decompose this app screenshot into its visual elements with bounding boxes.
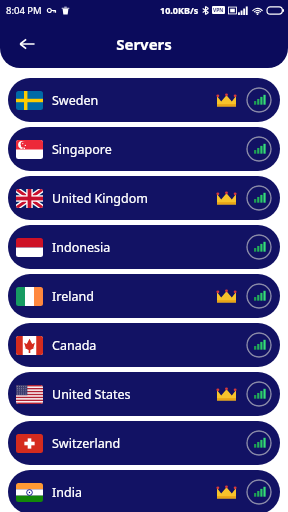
button[interactable]: Back bbox=[10, 27, 44, 61]
button[interactable]: Sweden bbox=[8, 78, 280, 122]
staticText: Ireland bbox=[52, 288, 217, 305]
staticText: Indonesia bbox=[52, 239, 217, 256]
staticText: 8:04 PM bbox=[6, 4, 42, 17]
staticText: Singapore bbox=[52, 141, 217, 158]
button[interactable]: India bbox=[8, 470, 280, 512]
staticText: Canada bbox=[52, 337, 217, 354]
staticText: 10.0KB/s bbox=[160, 4, 199, 16]
staticText: India bbox=[52, 484, 217, 501]
staticText: Servers bbox=[116, 34, 172, 54]
staticText: VPN bbox=[213, 7, 224, 14]
button[interactable]: Indonesia bbox=[8, 225, 280, 269]
button[interactable]: Ireland bbox=[8, 274, 280, 318]
button[interactable]: Canada bbox=[8, 323, 280, 367]
staticText: Sweden bbox=[52, 92, 217, 109]
button[interactable]: United Kingdom bbox=[8, 176, 280, 220]
button[interactable]: Switzerland bbox=[8, 421, 280, 465]
staticText: United Kingdom bbox=[52, 190, 217, 207]
staticText: Switzerland bbox=[52, 435, 217, 452]
staticText: United States bbox=[52, 386, 217, 403]
button[interactable]: United States bbox=[8, 372, 280, 416]
button[interactable]: Singapore bbox=[8, 127, 280, 171]
